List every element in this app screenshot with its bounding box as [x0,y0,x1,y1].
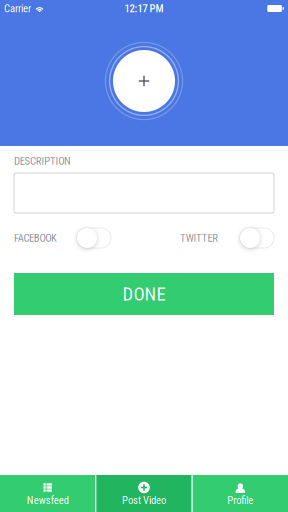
button[interactable]: TWITTER [180,227,274,249]
button[interactable]: FACEBOOK [14,227,111,249]
staticText: DONE [122,283,165,305]
staticText: TWITTER [180,232,218,244]
button[interactable]: Newsfeed [0,475,95,512]
staticText: 12:17 PM [124,2,163,15]
staticText: Carrier [4,2,31,15]
button[interactable]: Add video [104,41,184,121]
staticText: DESCRIPTION [14,155,71,167]
staticText: Profile [227,494,253,506]
button[interactable]: DONE [14,273,274,315]
staticText: FACEBOOK [14,232,57,244]
button[interactable]: Profile [193,475,288,512]
staticText: Post Video [122,494,166,506]
staticText: Newsfeed [27,494,69,506]
button[interactable]: Post Video [96,475,192,512]
